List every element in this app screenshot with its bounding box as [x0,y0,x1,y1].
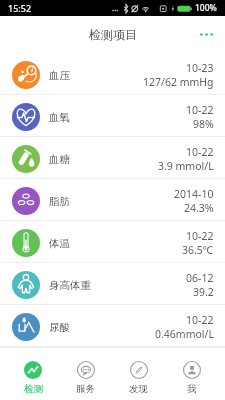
staticText: 39.2 [193,285,214,299]
button[interactable]: More options [188,23,225,46]
staticText: 0.46mmol/L [155,327,214,341]
staticText: 血氧 [49,111,70,124]
button[interactable]: 血氧 [0,95,225,136]
staticText: 发现 [129,383,148,395]
staticText: 10-22 [186,229,214,243]
button[interactable]: 检测 [7,355,59,400]
staticText: 我 [187,383,197,395]
staticText: 10-23 [186,61,214,75]
button[interactable]: 血压 [0,53,225,94]
staticText: 10-22 [186,145,214,159]
button[interactable]: 发现 [112,355,165,400]
staticText: 身高体重 [49,279,91,292]
staticText: 2014-10 [174,187,214,201]
staticText: 100% [195,2,217,14]
button[interactable]: 体温 [0,221,225,262]
staticText: 24.3% [184,201,214,215]
staticText: 98% [193,117,214,131]
staticText: 10-22 [186,313,214,327]
staticText: 体温 [49,237,70,250]
staticText: 06-12 [186,271,214,285]
staticText: 服务 [76,383,95,395]
staticText: 10-22 [186,103,214,117]
staticText: 检测项目 [89,27,137,42]
staticText: 127/62 mmHg [143,75,214,89]
button[interactable]: 身高体重 [0,263,225,304]
staticText: 36.5℃ [182,243,214,257]
staticText: 3.9 mmol/L [158,159,214,173]
staticText: 检测 [24,383,43,395]
button[interactable]: 尿酸 [0,305,225,346]
button[interactable]: 我 [165,355,218,400]
button[interactable]: 脂肪 [0,179,225,220]
staticText: 15:52 [8,2,32,14]
staticText: 脂肪 [49,195,70,208]
staticText: 尿酸 [49,321,70,334]
staticText: 血压 [49,69,70,82]
staticText: 血糖 [49,153,70,166]
button[interactable]: 服务 [59,355,112,400]
button[interactable]: 血糖 [0,137,225,178]
